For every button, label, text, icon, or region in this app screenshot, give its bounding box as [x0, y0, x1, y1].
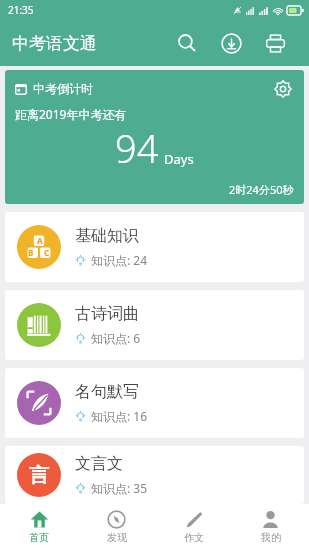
button[interactable]: 名句默写: [5, 368, 304, 438]
button[interactable]: 我的: [232, 504, 309, 550]
button[interactable]: Settings: [268, 74, 298, 104]
staticText: 作文: [184, 531, 204, 544]
staticText: 距离2019年中考还有: [15, 106, 127, 122]
button[interactable]: 言: [5, 446, 304, 504]
staticText: 知识点: 16: [91, 408, 148, 424]
staticText: 首页: [29, 531, 49, 544]
button[interactable]: 中考倒计时: [5, 70, 304, 204]
staticText: C: [44, 247, 50, 258]
staticText: 古诗词曲: [75, 304, 139, 324]
button[interactable]: Print: [253, 21, 297, 65]
staticText: 中考倒计时: [33, 81, 93, 96]
staticText: 言: [29, 463, 49, 488]
button[interactable]: 作文: [155, 504, 232, 550]
staticText: 知识点: 6: [91, 330, 141, 346]
button[interactable]: A: [5, 212, 304, 282]
staticText: 知识点: 24: [91, 252, 148, 268]
staticText: 名句默写: [75, 382, 139, 402]
staticText: 文言文: [75, 454, 123, 474]
staticText: 94: [115, 122, 159, 174]
button[interactable]: 古诗词曲: [5, 290, 304, 360]
staticText: 发现: [107, 531, 127, 544]
staticText: 我的: [261, 531, 281, 544]
button[interactable]: Search: [165, 21, 209, 65]
staticText: 中考语文通: [12, 33, 97, 54]
staticText: 21:35: [8, 3, 34, 17]
staticText: B: [28, 247, 34, 258]
button[interactable]: 首页: [0, 504, 78, 550]
button[interactable]: Download: [209, 21, 253, 65]
staticText: Days: [164, 150, 194, 168]
staticText: A: [37, 235, 43, 246]
staticText: 2时24分50秒: [229, 182, 294, 197]
staticText: 知识点: 35: [91, 480, 148, 496]
button[interactable]: 发现: [78, 504, 155, 550]
staticText: 基础知识: [75, 226, 139, 246]
